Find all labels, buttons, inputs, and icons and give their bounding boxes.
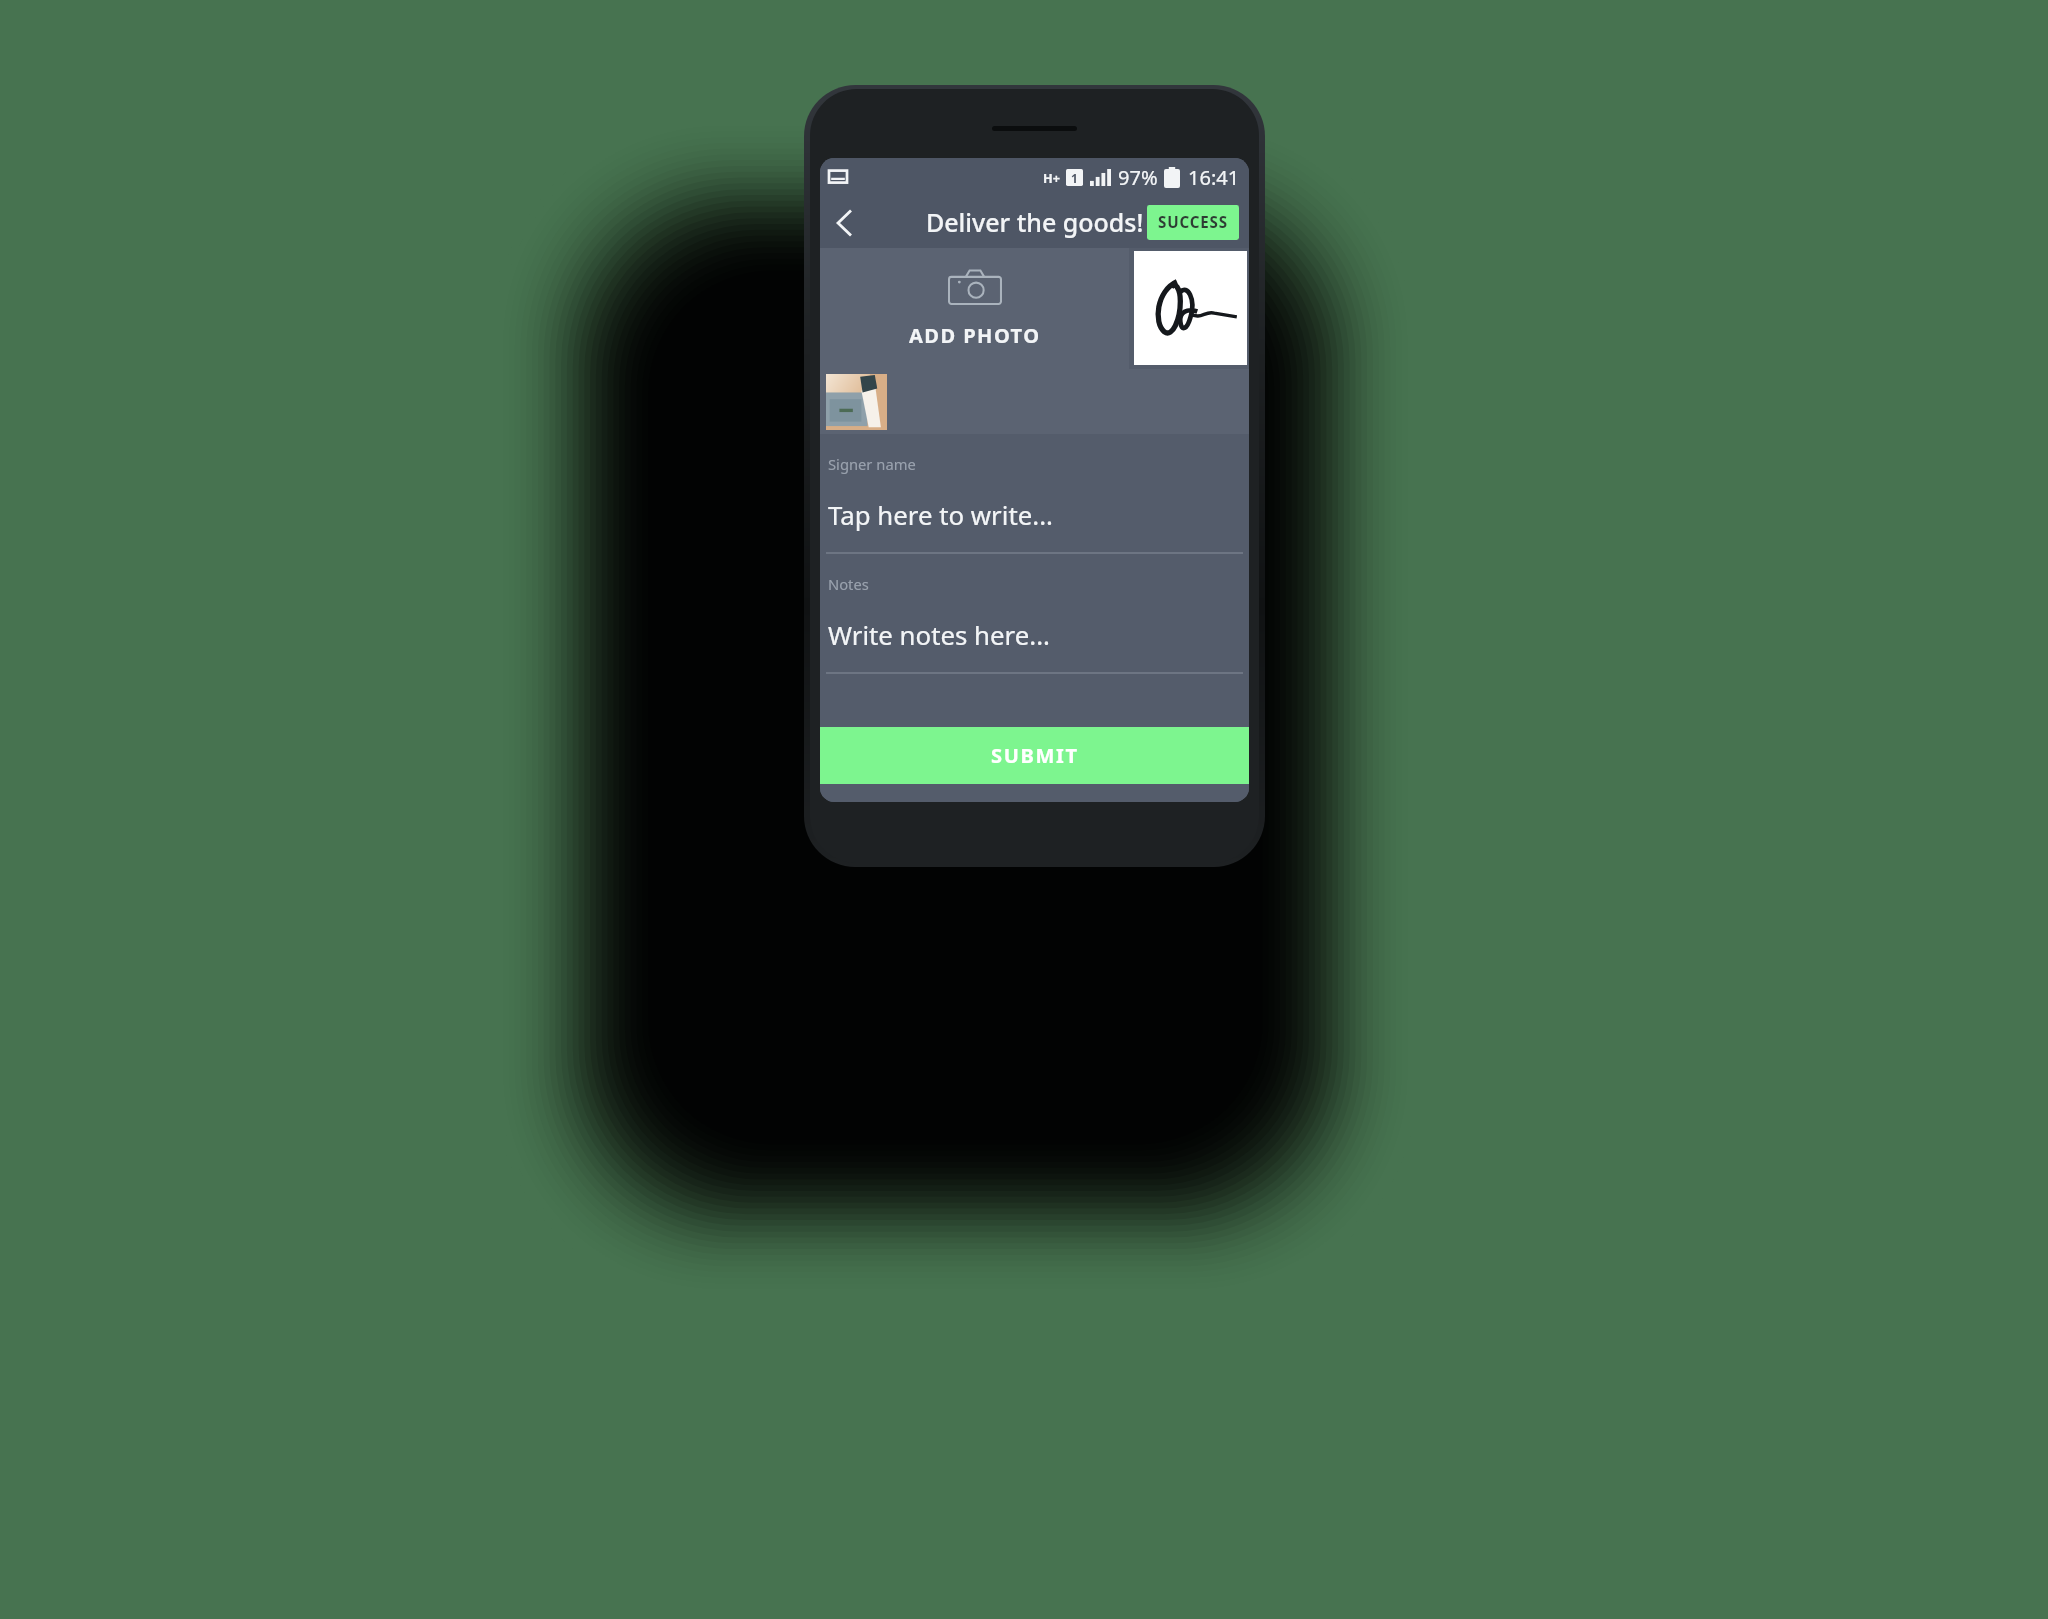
button[interactable]: SUCCESS — [1147, 205, 1239, 240]
button[interactable]: Signer name — [820, 434, 1249, 554]
staticText: 1 — [1071, 170, 1078, 186]
staticText: SUBMIT — [991, 742, 1079, 769]
staticText: 97% — [1118, 164, 1158, 191]
button[interactable]: Notes — [820, 554, 1249, 674]
button[interactable]: Photo thumbnail — [826, 374, 887, 430]
staticText: Write notes here... — [828, 617, 1051, 652]
button[interactable]: Signature — [1134, 251, 1247, 365]
staticText: SUCCESS — [1158, 212, 1228, 233]
button[interactable]: SUBMIT — [820, 727, 1249, 784]
staticText: H+ — [1043, 169, 1060, 186]
staticText: ADD PHOTO — [909, 322, 1041, 349]
staticText: Notes — [828, 574, 869, 594]
staticText: Signer name — [828, 454, 916, 474]
button[interactable]: Back — [820, 198, 869, 247]
staticText: 16:41 — [1188, 164, 1240, 191]
staticText: Tap here to write... — [828, 497, 1054, 532]
button[interactable]: ADD PHOTO — [820, 248, 1129, 369]
staticText: Deliver the goods! — [926, 205, 1144, 239]
